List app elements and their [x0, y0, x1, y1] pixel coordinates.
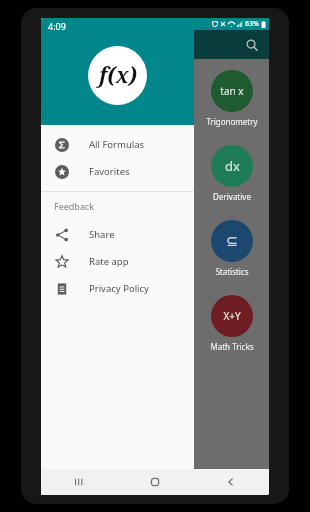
- staticText: Favorites: [89, 165, 130, 178]
- button[interactable]: Rate app: [41, 248, 194, 275]
- staticText: ⊆: [226, 233, 238, 249]
- staticText: 4:09: [48, 20, 66, 32]
- button[interactable]: All Formulas: [41, 131, 194, 158]
- staticText: Trigonometry: [206, 116, 258, 127]
- button[interactable]: ⊆: [207, 219, 257, 278]
- staticText: Derivative: [213, 191, 251, 202]
- staticText: f(x): [99, 61, 137, 90]
- button[interactable]: tan x: [202, 69, 262, 128]
- button[interactable]: Share: [41, 221, 194, 248]
- button[interactable]: dx: [207, 144, 257, 203]
- staticText: 63%: [245, 19, 259, 29]
- staticText: Rate app: [89, 255, 129, 268]
- button[interactable]: X+Y: [206, 294, 258, 353]
- button[interactable]: Back: [193, 469, 269, 495]
- button[interactable]: Privacy Policy: [41, 275, 194, 302]
- staticText: Statistics: [215, 266, 249, 277]
- staticText: dx: [225, 157, 240, 175]
- button[interactable]: Recent apps: [41, 469, 117, 495]
- button[interactable]: Search: [242, 35, 262, 55]
- staticText: Share: [89, 228, 115, 241]
- staticText: tan x: [220, 84, 244, 98]
- button[interactable]: Favorites: [41, 158, 194, 185]
- staticText: X+Y: [223, 309, 241, 323]
- staticText: Feedback: [54, 200, 95, 212]
- staticText: Privacy Policy: [89, 282, 149, 295]
- staticText: All Formulas: [89, 138, 145, 151]
- staticText: Math Tricks: [210, 341, 254, 352]
- button[interactable]: Home: [117, 469, 193, 495]
